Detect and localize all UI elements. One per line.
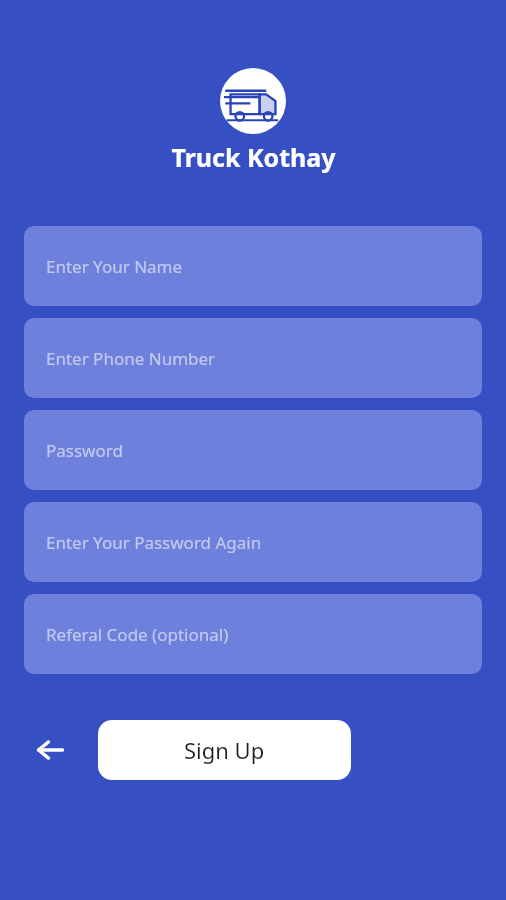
button[interactable]: Enter Phone Number [24,318,482,398]
staticText: Sign Up [184,735,265,765]
staticText: Enter Phone Number [46,347,216,370]
button[interactable]: Sign Up [98,720,351,780]
staticText: Referal Code (optional) [46,623,229,646]
button[interactable]: Enter Your Name [24,226,482,306]
staticText: Password [46,439,123,462]
button[interactable]: Password [24,410,482,490]
button[interactable]: Enter Your Password Again [24,502,482,582]
staticText: Truck Kothay [171,140,336,174]
staticText: Enter Your Name [46,255,183,278]
button[interactable]: Referal Code (optional) [24,594,482,674]
button[interactable]: Back [24,724,76,776]
staticText: Enter Your Password Again [46,531,262,554]
